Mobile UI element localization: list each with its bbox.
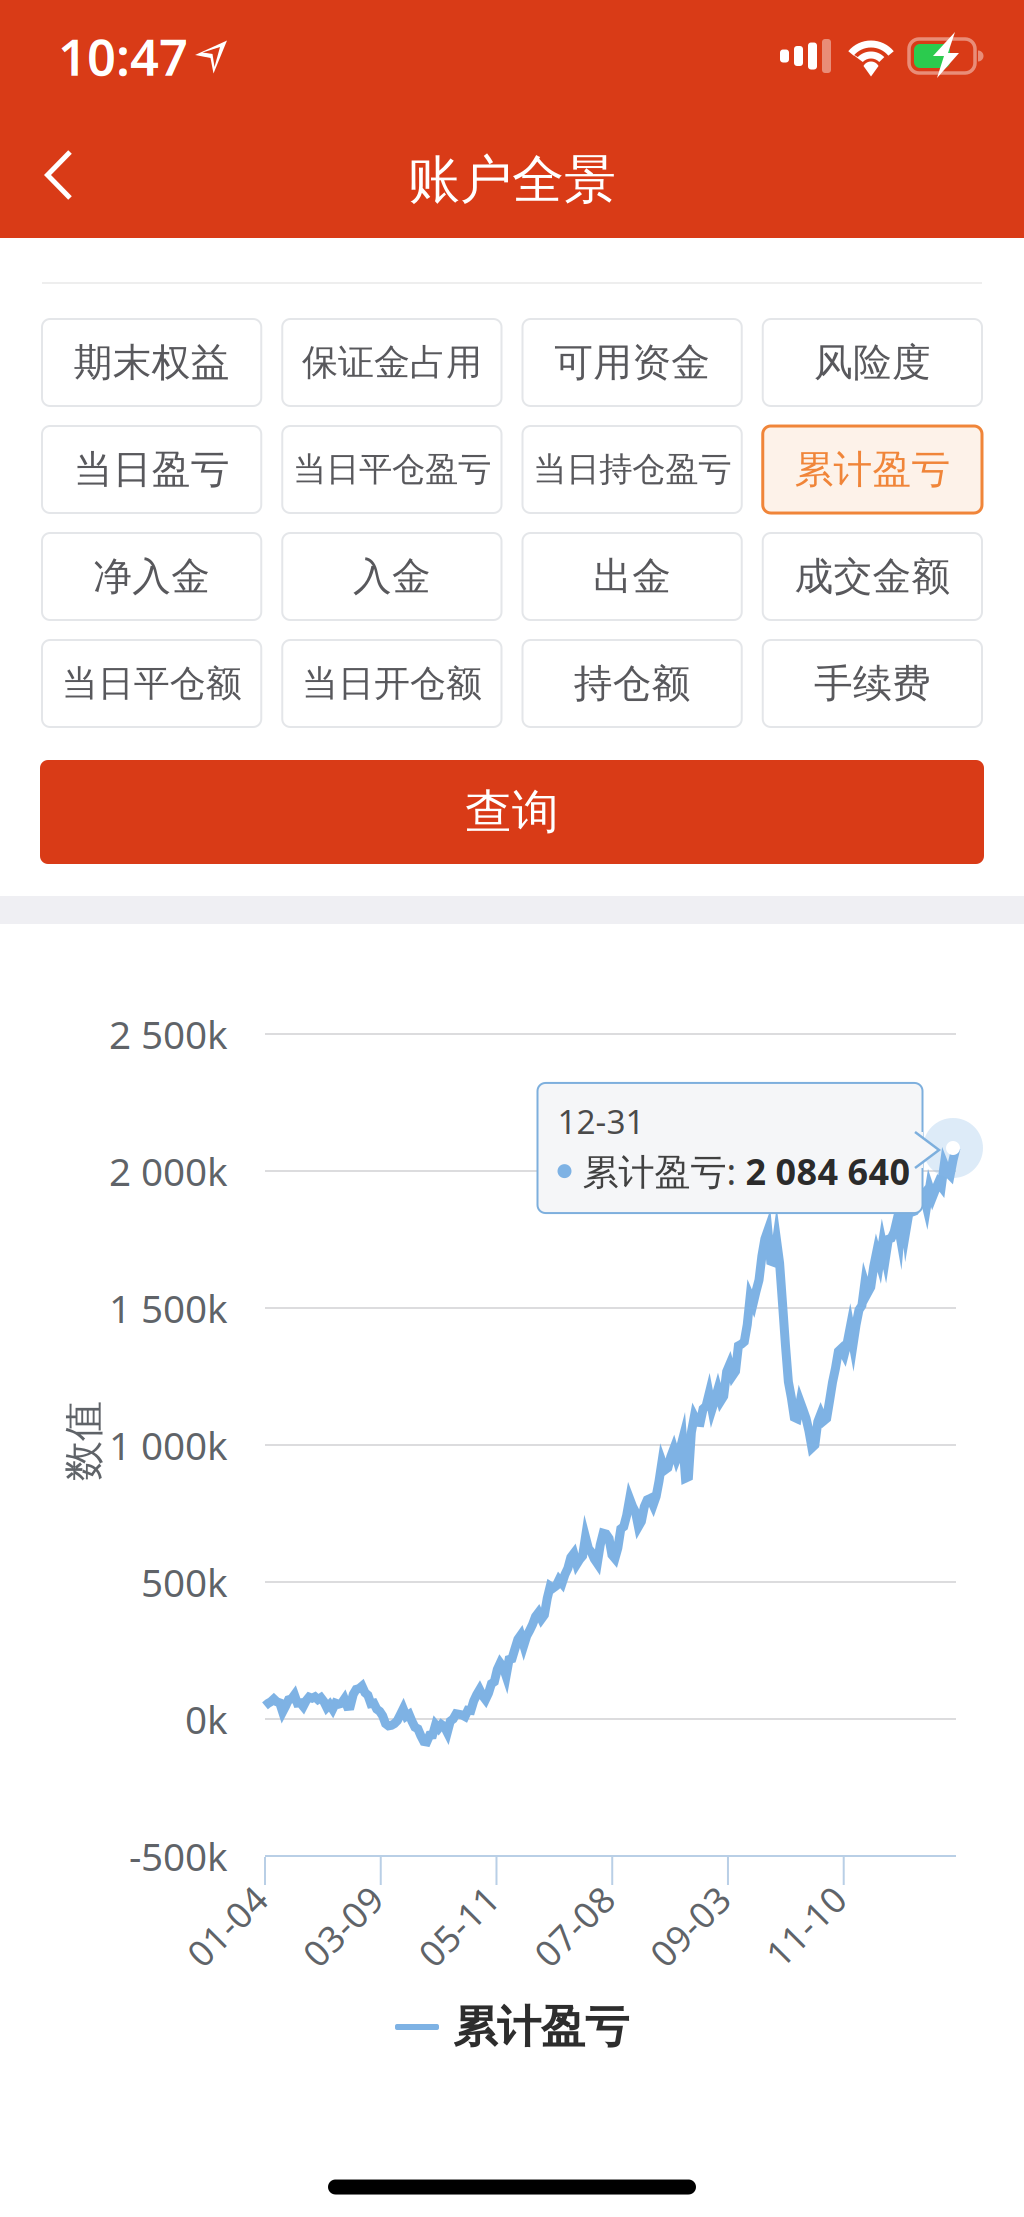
staticText: 账户全景: [408, 148, 616, 212]
button[interactable]: 累计盈亏: [763, 426, 982, 513]
button[interactable]: 当日平仓盈亏: [282, 426, 501, 513]
staticText: 数: [64, 1436, 104, 1485]
button[interactable]: 入金: [282, 533, 501, 620]
staticText: 2 500k: [109, 1008, 228, 1060]
staticText: 当日开仓额: [302, 661, 482, 706]
staticText: 期末权益: [74, 339, 230, 386]
button[interactable]: Back: [0, 127, 117, 222]
staticText: 10:47: [58, 22, 188, 90]
staticText: 手续费: [814, 660, 931, 707]
staticText: 累计盈亏: [794, 446, 950, 493]
button[interactable]: 持仓额: [522, 640, 742, 727]
button[interactable]: 当日开仓额: [282, 640, 501, 727]
staticText: -500k: [129, 1830, 228, 1882]
staticText: 1 000k: [109, 1419, 228, 1471]
staticText: 可用资金: [554, 339, 710, 386]
button[interactable]: 风险度: [763, 319, 982, 406]
button[interactable]: 出金: [522, 533, 742, 620]
staticText: 11-10: [758, 1902, 854, 1950]
staticText: 累计盈亏: [453, 2000, 629, 2054]
staticText: 累计盈亏:: [582, 1147, 745, 1195]
staticText: 风险度: [814, 339, 931, 386]
staticText: 12-31: [557, 1099, 644, 1143]
staticText: 500k: [141, 1556, 228, 1608]
staticText: 0k: [185, 1693, 228, 1745]
staticText: 持仓额: [574, 660, 691, 707]
staticText: 当日盈亏: [74, 446, 230, 493]
staticText: 成交金额: [794, 553, 950, 600]
staticText: 查询: [465, 783, 559, 841]
button[interactable]: 手续费: [763, 640, 982, 727]
staticText: 入金: [353, 553, 431, 600]
button[interactable]: 净入金: [42, 533, 261, 620]
staticText: 值: [64, 1396, 104, 1445]
button[interactable]: 当日持仓盈亏: [522, 426, 742, 513]
button[interactable]: 当日盈亏: [42, 426, 261, 513]
staticText: 当日平仓盈亏: [293, 449, 491, 490]
button[interactable]: 当日平仓额: [42, 640, 261, 727]
staticText: 01-04: [179, 1902, 275, 1950]
staticText: 03-09: [295, 1902, 391, 1950]
staticText: 出金: [593, 553, 671, 600]
button[interactable]: 保证金占用: [282, 319, 501, 406]
button[interactable]: 期末权益: [42, 319, 261, 406]
staticText: 2 000k: [109, 1145, 228, 1197]
button[interactable]: 成交金额: [763, 533, 982, 620]
staticText: 当日平仓额: [62, 661, 242, 706]
staticText: 07-08: [526, 1902, 622, 1950]
button[interactable]: 查询: [40, 760, 984, 864]
staticText: 当日持仓盈亏: [533, 449, 731, 490]
staticText: 05-11: [410, 1902, 506, 1950]
button[interactable]: 可用资金: [522, 319, 742, 406]
staticText: 净入金: [93, 553, 210, 600]
staticText: 09-03: [642, 1902, 738, 1950]
staticText: 2 084 640: [745, 1147, 910, 1195]
staticText: 保证金占用: [302, 340, 482, 385]
staticText: 1 500k: [109, 1282, 228, 1334]
